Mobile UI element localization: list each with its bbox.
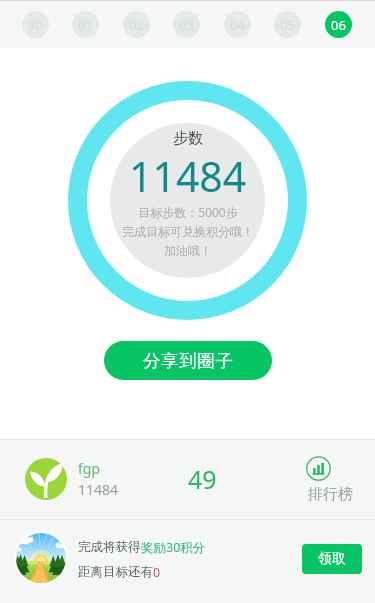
button[interactable]: 领取 bbox=[302, 544, 362, 574]
button[interactable]: 05 bbox=[274, 11, 301, 38]
staticText: 30 bbox=[28, 16, 43, 34]
button[interactable]: 03 bbox=[173, 11, 200, 38]
button[interactable]: 01 bbox=[72, 11, 99, 38]
staticText: 领取 bbox=[318, 550, 346, 568]
staticText: 02 bbox=[129, 16, 144, 34]
staticText: 分享到圈子 bbox=[143, 350, 234, 372]
staticText: 05 bbox=[280, 16, 295, 34]
staticText: 04 bbox=[230, 16, 245, 34]
staticText: 奖励30积分 bbox=[141, 539, 206, 556]
staticText: 0 bbox=[153, 564, 161, 581]
staticText: fgp bbox=[78, 459, 101, 478]
button[interactable]: 04 bbox=[224, 11, 251, 38]
staticText: 49 bbox=[188, 462, 217, 496]
staticText: 01 bbox=[78, 16, 93, 34]
staticText: 距离目标还有 bbox=[78, 564, 153, 580]
button[interactable]: 02 bbox=[123, 11, 150, 38]
button[interactable]: 06 bbox=[325, 11, 352, 38]
button[interactable]: 30 bbox=[22, 11, 49, 38]
staticText: 11484 bbox=[129, 148, 247, 204]
button[interactable]: 分享到圈子 bbox=[104, 341, 272, 380]
staticText: 排行榜 bbox=[308, 485, 353, 504]
staticText: 目标步数：5000步 完成目标可兑换积分哦！ 加油哦！ bbox=[122, 204, 254, 259]
staticText: 11484 bbox=[78, 480, 119, 499]
staticText: 步数 bbox=[173, 129, 203, 148]
button[interactable]: 排行榜 bbox=[300, 450, 362, 503]
staticText: 完成将获得 bbox=[78, 539, 141, 555]
staticText: 03 bbox=[179, 16, 194, 34]
staticText: 06 bbox=[331, 16, 346, 34]
